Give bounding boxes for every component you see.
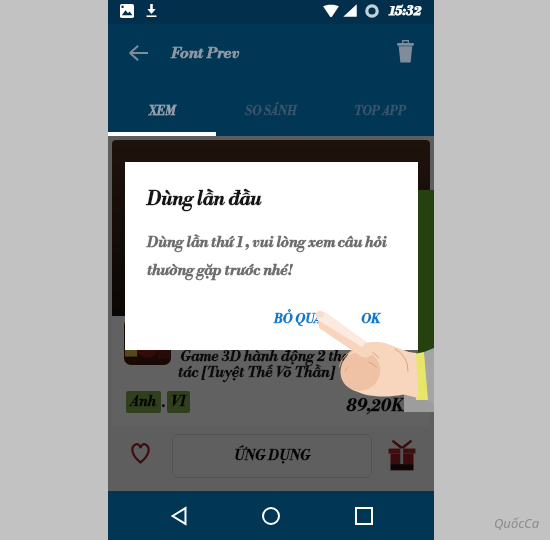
staticText: 89,20KB bbox=[346, 395, 416, 416]
staticText: XEM bbox=[149, 104, 176, 119]
button[interactable]: SO SÁNH bbox=[216, 87, 325, 136]
button[interactable]: Back bbox=[157, 494, 201, 538]
button[interactable]: Home bbox=[249, 494, 293, 538]
staticText: QuốcCa bbox=[494, 514, 540, 532]
button[interactable]: TOP APP bbox=[325, 87, 434, 136]
button[interactable]: Delete bbox=[389, 35, 421, 67]
button[interactable]: Recent apps bbox=[342, 494, 386, 538]
staticText: VI bbox=[171, 393, 186, 411]
button[interactable]: Favorite bbox=[126, 438, 154, 466]
staticText: Dùng lần đầu bbox=[147, 188, 262, 211]
staticText: tác [Tuyệt Thế Võ Thần] bbox=[178, 364, 335, 382]
staticText: TOP APP bbox=[354, 104, 406, 119]
staticText: Dùng lần thứ 1 , vui lòng xem câu hỏi bbox=[147, 234, 387, 252]
staticText: OK bbox=[361, 311, 381, 327]
button[interactable]: BỎ QUA bbox=[266, 304, 330, 334]
staticText: BỎ QUA bbox=[274, 311, 322, 327]
staticText: . bbox=[162, 393, 166, 412]
button[interactable]: Back bbox=[122, 37, 154, 69]
button[interactable]: Game 3D hành động 2 thao bbox=[112, 140, 430, 426]
button[interactable]: OK bbox=[353, 304, 389, 334]
staticText: thường gặp trước nhé! bbox=[147, 262, 293, 280]
button[interactable]: ỨNG DỤNG bbox=[172, 434, 372, 478]
staticText: ỨNG DỤNG bbox=[234, 447, 311, 465]
staticText: Font Prev bbox=[171, 44, 240, 63]
staticText: Game 3D hành động 2 thao bbox=[180, 348, 359, 366]
staticText: Anh bbox=[130, 393, 157, 411]
button[interactable]: Gift advertisement bbox=[385, 437, 419, 471]
staticText: 15:32 bbox=[389, 3, 422, 20]
staticText: SO SÁNH bbox=[245, 104, 297, 119]
button[interactable]: XEM bbox=[108, 87, 216, 136]
